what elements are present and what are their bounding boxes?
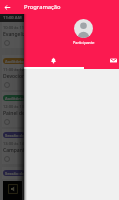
staticText: 11:00 às 12:00 xyxy=(3,67,25,72)
staticText: Auditório xyxy=(5,59,24,64)
staticText: 11:00 AM xyxy=(3,15,22,21)
staticText: Evangelização e xyxy=(3,31,25,38)
staticText: Participante xyxy=(73,40,95,45)
staticText: 12:00 às 13:00 xyxy=(3,104,25,109)
button[interactable]: Auditório xyxy=(2,55,25,90)
button[interactable]: Mensagens xyxy=(83,53,119,69)
staticText: Auditório xyxy=(5,96,24,101)
button[interactable]: Notificações xyxy=(24,53,83,69)
staticText: Programação xyxy=(24,3,61,11)
staticText: 10:00 às 11:00 xyxy=(3,25,25,30)
staticText: Devocional xyxy=(3,73,25,80)
staticText: Sessão de xyxy=(5,171,25,176)
button[interactable]: Voltar xyxy=(1,1,14,14)
button[interactable]: 10:00 às 11:00 xyxy=(2,22,25,48)
staticText: Painel de xyxy=(3,110,25,117)
button[interactable]: Sessão de xyxy=(2,129,25,164)
staticText: 13:00 às 14:00 xyxy=(3,141,25,146)
button[interactable]: Sessão de xyxy=(2,167,25,179)
button[interactable]: Auditório xyxy=(2,92,25,127)
staticText: Sessão de xyxy=(5,133,25,138)
staticText: Campanha xyxy=(3,147,25,154)
